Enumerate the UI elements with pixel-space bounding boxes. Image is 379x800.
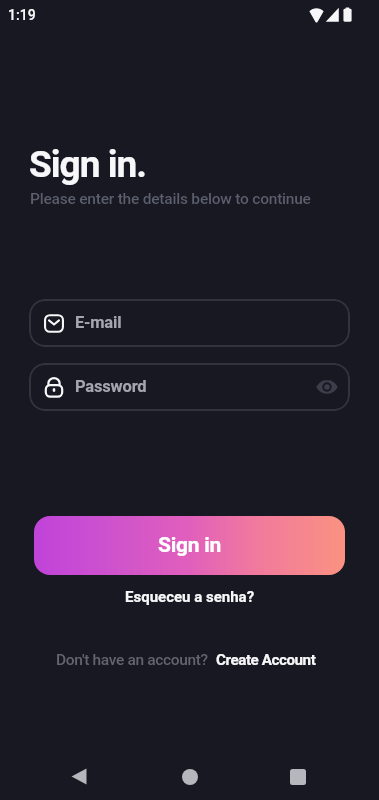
button[interactable]: E-mail [29,299,350,347]
staticText: Password [75,377,147,396]
button[interactable]: Back [55,752,103,800]
button[interactable]: Create Account [216,651,316,669]
staticText: Please enter the details below to contin… [30,190,311,208]
staticText: E-mail [75,313,122,332]
staticText: Sign in. [29,143,146,186]
button[interactable]: Sign in [34,516,345,575]
button[interactable]: Password [29,363,350,411]
button[interactable]: Esqueceu a senha? [117,585,263,609]
button[interactable]: Recents [274,753,322,800]
staticText: Sign in [158,533,222,558]
button[interactable]: Show password [316,376,338,398]
staticText: 1:19 [8,7,36,23]
button[interactable]: Home [166,753,214,800]
staticText: Don't have an account? [56,651,208,669]
